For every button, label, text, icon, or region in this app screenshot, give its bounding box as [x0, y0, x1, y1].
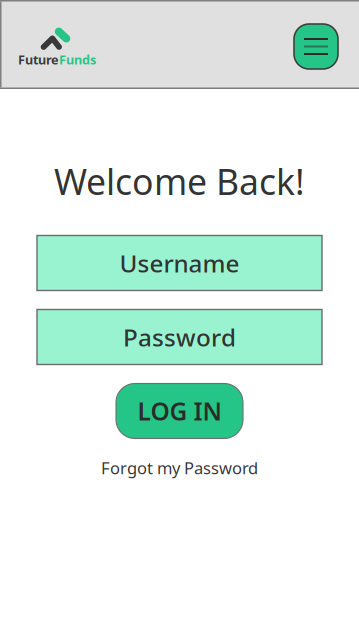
- button[interactable]: Username: [37, 235, 322, 290]
- staticText: Password: [123, 320, 236, 354]
- staticText: Future: [18, 51, 59, 68]
- button[interactable]: Menu: [294, 24, 338, 69]
- staticText: Username: [119, 246, 239, 280]
- staticText: Forgot my Password: [101, 456, 258, 479]
- button[interactable]: Password: [37, 309, 322, 364]
- staticText: LOG IN: [137, 394, 221, 428]
- staticText: Welcome Back!: [54, 157, 305, 205]
- button[interactable]: LOG IN: [116, 383, 243, 438]
- button[interactable]: Forgot my Password: [101, 456, 258, 479]
- staticText: Funds: [59, 51, 96, 68]
